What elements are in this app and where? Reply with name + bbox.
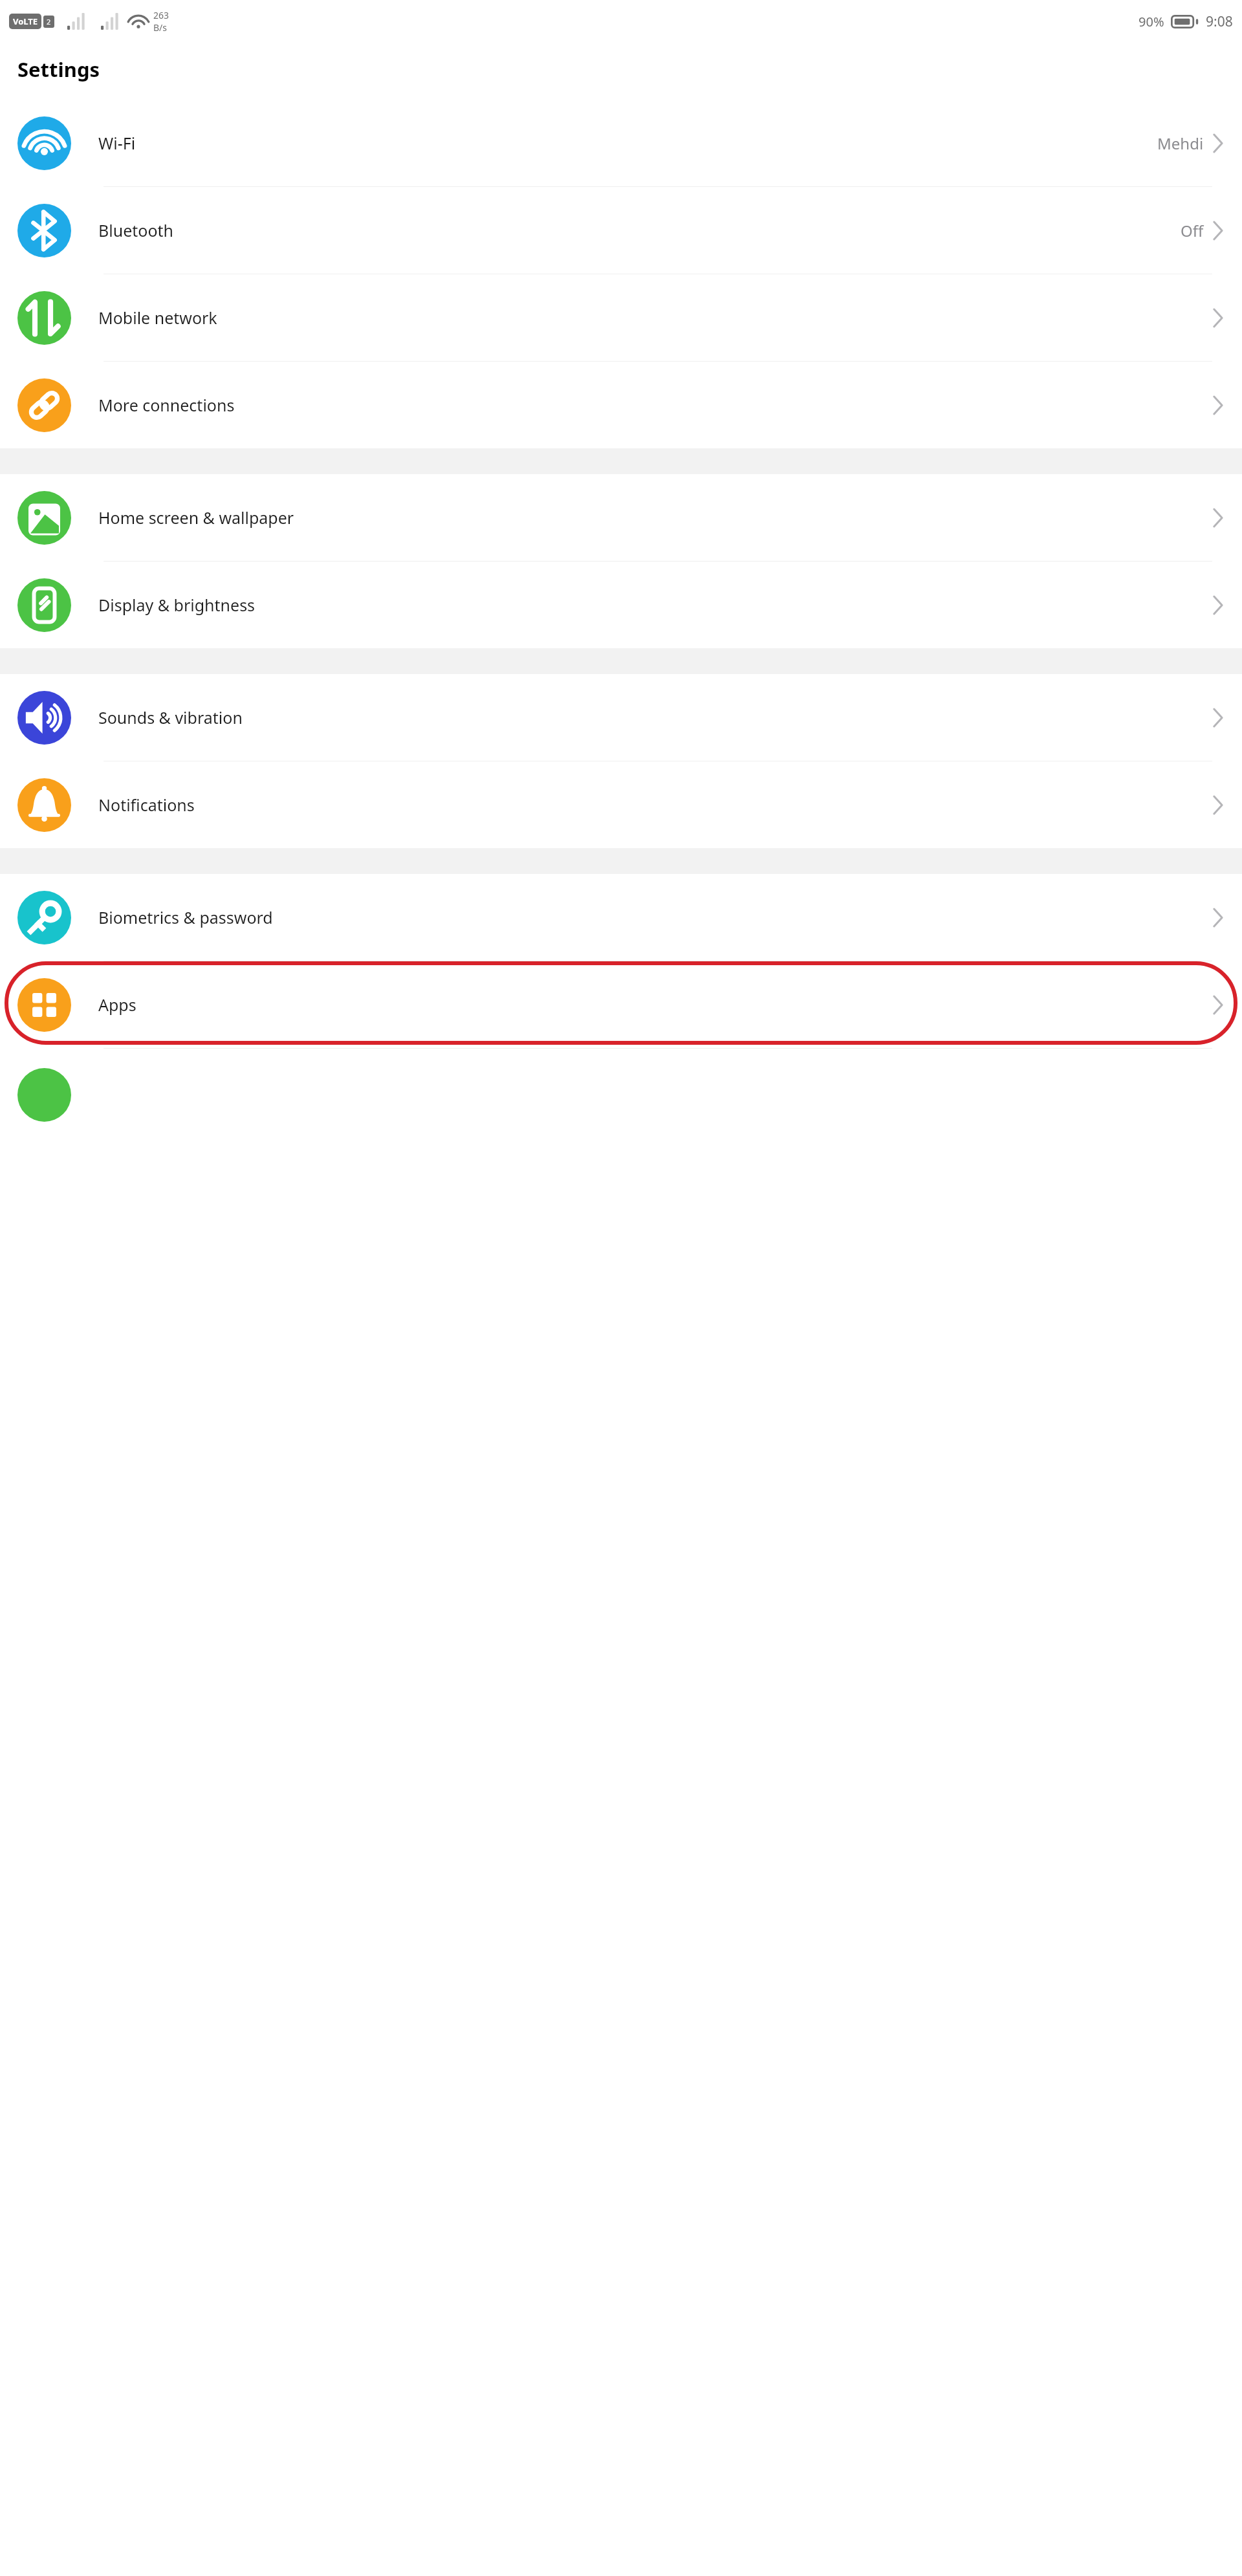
staticText: More connections [98, 394, 1213, 416]
other: Cellular signal [67, 13, 87, 30]
button[interactable]: Wi-Fi [0, 100, 1242, 187]
staticText: Mobile network [98, 307, 1213, 329]
other: Wi-Fi signal [128, 13, 149, 30]
staticText: 9:08 [1206, 12, 1233, 31]
button[interactable]: Home screen & wallpaper [0, 474, 1242, 562]
button[interactable]: Notifications [0, 761, 1242, 848]
staticText: Biometrics & password [98, 906, 1213, 928]
staticText: Off [1181, 220, 1204, 241]
staticText: Bluetooth [98, 219, 1181, 241]
staticText: 90% [1138, 13, 1164, 30]
staticText: 263 [153, 9, 169, 21]
button[interactable]: Biometrics & password [0, 874, 1242, 961]
button[interactable]: Apps [0, 961, 1242, 1049]
staticText: Wi-Fi [98, 132, 1157, 154]
other: Battery 90 percent [1171, 15, 1198, 28]
staticText: 2 [47, 17, 51, 27]
staticText: B/s [153, 21, 168, 34]
button[interactable]: Sounds & vibration [0, 674, 1242, 761]
staticText: VoLTE [13, 16, 38, 27]
button[interactable]: Bluetooth [0, 187, 1242, 274]
staticText: Home screen & wallpaper [98, 507, 1213, 529]
staticText: Sounds & vibration [98, 706, 1213, 728]
staticText: Apps [98, 994, 1213, 1016]
button[interactable]: Display & brightness [0, 562, 1242, 648]
button[interactable]: Mobile network [0, 274, 1242, 362]
other: Cellular signal [101, 13, 120, 30]
staticText: Settings [17, 56, 100, 83]
button[interactable]: More connections [0, 362, 1242, 448]
staticText: Mehdi [1157, 133, 1204, 154]
staticText: Notifications [98, 794, 1213, 816]
staticText: Display & brightness [98, 594, 1213, 616]
